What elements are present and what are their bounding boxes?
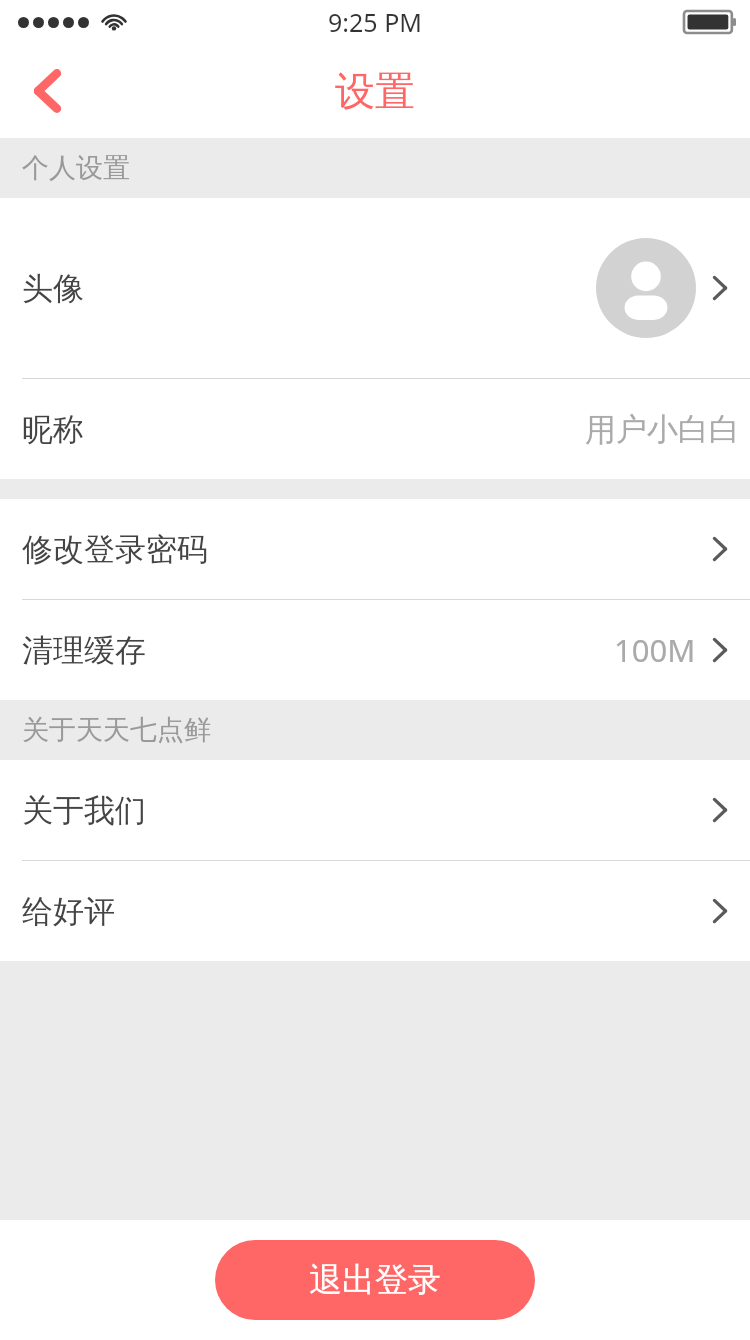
button[interactable]: 退出登录 [215, 1240, 535, 1320]
staticText: 昵称 [22, 410, 84, 449]
staticText: 退出登录 [309, 1259, 441, 1301]
staticText: 用户小白白 [585, 410, 740, 449]
staticText: 给好评 [22, 892, 115, 931]
button[interactable]: 头像 [0, 198, 750, 378]
button[interactable]: Back [0, 44, 94, 138]
staticText: 9:25 PM [328, 5, 422, 39]
staticText: 修改登录密码 [22, 530, 208, 569]
button[interactable]: 昵称 [0, 379, 750, 479]
staticText: 关于我们 [22, 791, 146, 830]
staticText: 清理缓存 [22, 631, 146, 670]
button[interactable]: 修改登录密码 [0, 499, 750, 599]
staticText: 100M [614, 629, 696, 671]
staticText: 设置 [335, 66, 415, 116]
button[interactable]: 给好评 [0, 861, 750, 961]
button[interactable]: 关于我们 [0, 760, 750, 860]
staticText: 个人设置 [22, 151, 130, 185]
button[interactable]: 清理缓存 [0, 600, 750, 700]
staticText: 头像 [22, 269, 84, 308]
staticText: 关于天天七点鲜 [22, 713, 211, 747]
